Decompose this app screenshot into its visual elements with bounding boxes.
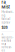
staticText: Aurora Mist (1, 0, 12, 9)
staticText: Hydrating facial spray (1, 10, 13, 24)
staticText: A weightless mist that refreshes (1, 33, 13, 52)
staticText: $28 (1, 25, 7, 30)
